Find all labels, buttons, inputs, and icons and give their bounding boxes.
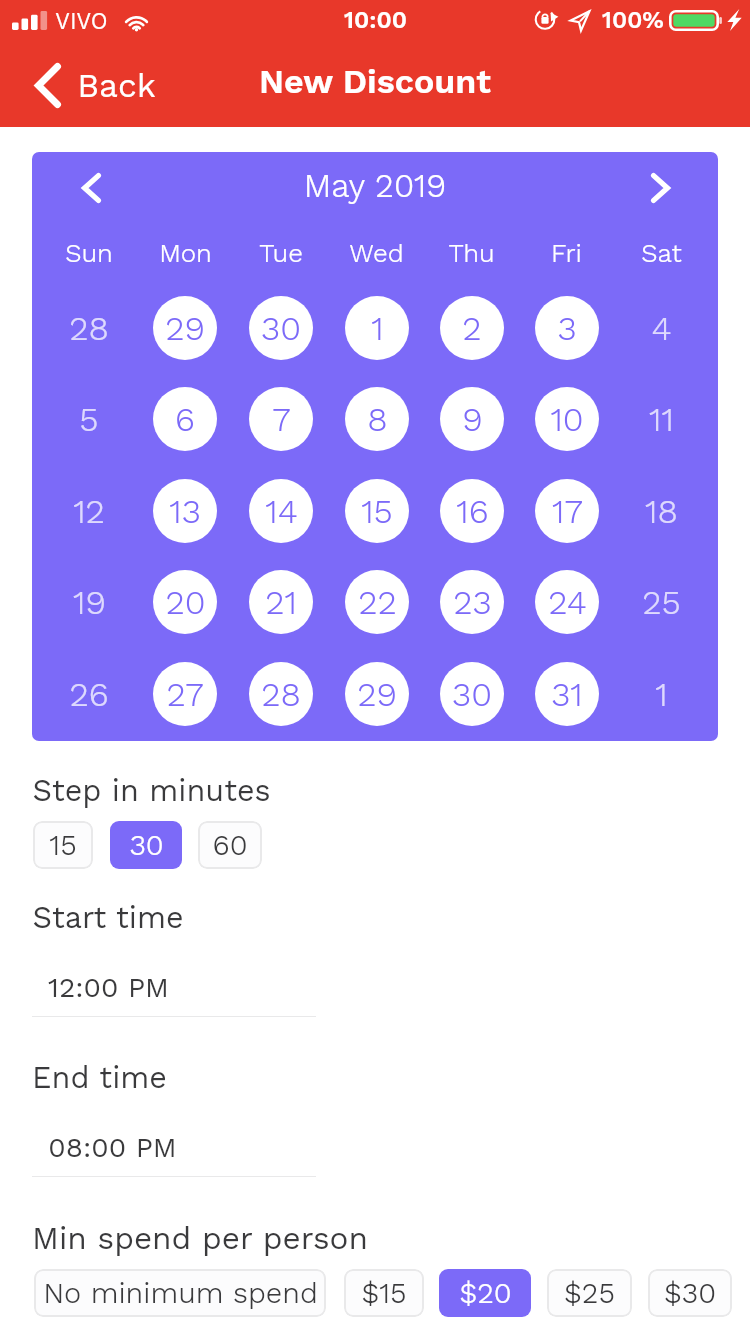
button[interactable]: 1	[614, 648, 709, 739]
staticText: 23	[453, 582, 492, 622]
staticText: 15	[361, 491, 393, 531]
staticText: 28	[261, 674, 301, 714]
staticText: Back	[77, 66, 156, 105]
staticText: Mon	[159, 238, 212, 268]
button[interactable]: 1	[329, 282, 424, 373]
button[interactable]: 23	[424, 556, 519, 647]
button[interactable]: 30	[424, 648, 519, 739]
button[interactable]: 7	[233, 373, 329, 464]
staticText: 7	[272, 399, 291, 439]
button[interactable]: 30	[110, 821, 182, 869]
staticText: Thu	[448, 238, 495, 268]
button[interactable]: Back	[35, 54, 156, 116]
staticText: $25	[564, 1276, 615, 1310]
button[interactable]: $25	[547, 1269, 632, 1317]
staticText: New Discount	[259, 61, 491, 101]
staticText: 20	[165, 582, 206, 622]
button[interactable]: 13	[137, 465, 233, 556]
staticText: No minimum spend	[43, 1276, 318, 1310]
button[interactable]: 21	[233, 556, 329, 647]
staticText: 8	[367, 399, 388, 439]
staticText: 5	[79, 399, 99, 439]
staticText: 11	[649, 399, 674, 439]
button[interactable]: 28	[233, 648, 329, 739]
button[interactable]: 9	[424, 373, 519, 464]
button[interactable]: 11	[614, 373, 709, 464]
staticText: End time	[32, 1060, 167, 1096]
staticText: 13	[169, 491, 201, 531]
staticText: 30	[261, 308, 301, 348]
staticText: Tue	[259, 238, 303, 268]
staticText: 31	[551, 674, 583, 714]
button[interactable]: 28	[41, 282, 137, 373]
staticText: 16	[456, 491, 489, 531]
staticText: $20	[459, 1276, 512, 1310]
button[interactable]: $20	[439, 1269, 531, 1317]
button[interactable]: 15	[329, 465, 424, 556]
button[interactable]: Next month	[636, 164, 684, 212]
staticText: May 2019	[32, 166, 718, 205]
button[interactable]: 5	[41, 373, 137, 464]
button[interactable]: 17	[519, 465, 614, 556]
staticText: Min spend per person	[32, 1220, 368, 1257]
staticText: 10:00	[344, 6, 407, 34]
button[interactable]: 20	[137, 556, 233, 647]
staticText: 30	[452, 674, 492, 714]
button[interactable]: 8	[329, 373, 424, 464]
button[interactable]: $30	[648, 1269, 732, 1317]
staticText: 28	[69, 308, 109, 348]
staticText: 21	[265, 582, 297, 622]
button[interactable]: 27	[137, 648, 233, 739]
staticText: 1	[371, 308, 384, 348]
staticText: 9	[462, 399, 483, 439]
staticText: 12:00 PM	[48, 971, 169, 1004]
button[interactable]: 26	[41, 648, 137, 739]
button[interactable]: $15	[344, 1269, 424, 1317]
button[interactable]: 14	[233, 465, 329, 556]
button[interactable]: 15	[33, 821, 93, 869]
button[interactable]: 6	[137, 373, 233, 464]
staticText: 18	[645, 491, 678, 531]
staticText: 14	[265, 491, 298, 531]
staticText: $15	[361, 1276, 407, 1310]
staticText: Sun	[65, 238, 113, 268]
staticText: 22	[358, 582, 397, 622]
staticText: 3	[557, 308, 577, 348]
button[interactable]: 19	[41, 556, 137, 647]
button[interactable]: Previous month	[67, 164, 115, 212]
button[interactable]: 10	[519, 373, 614, 464]
staticText: 4	[651, 308, 672, 348]
button[interactable]: 3	[519, 282, 614, 373]
button[interactable]: 4	[614, 282, 709, 373]
button[interactable]: 29	[329, 648, 424, 739]
staticText: Fri	[551, 238, 582, 268]
button[interactable]: 22	[329, 556, 424, 647]
staticText: 60	[212, 828, 248, 862]
staticText: Wed	[349, 238, 404, 268]
button[interactable]: 30	[233, 282, 329, 373]
staticText: 19	[73, 582, 106, 622]
button[interactable]: 16	[424, 465, 519, 556]
button[interactable]: 60	[198, 821, 262, 869]
staticText: VIVO	[55, 8, 108, 34]
button[interactable]: 25	[614, 556, 709, 647]
staticText: 15	[49, 828, 77, 862]
button[interactable]: 31	[519, 648, 614, 739]
staticText: 29	[357, 674, 397, 714]
staticText: 2	[462, 308, 482, 348]
staticText: Step in minutes	[32, 773, 271, 809]
button[interactable]: 29	[137, 282, 233, 373]
staticText: 24	[548, 582, 587, 622]
staticText: 1	[655, 674, 668, 714]
staticText: 10	[550, 399, 584, 439]
staticText: 30	[129, 828, 164, 862]
button[interactable]: 24	[519, 556, 614, 647]
staticText: $30	[664, 1276, 716, 1310]
button[interactable]: 2	[424, 282, 519, 373]
staticText: 29	[165, 308, 205, 348]
button[interactable]: 18	[614, 465, 709, 556]
staticText: Sat	[641, 238, 682, 268]
button[interactable]: 12	[41, 465, 137, 556]
staticText: 26	[69, 674, 109, 714]
button[interactable]: No minimum spend	[34, 1269, 326, 1317]
